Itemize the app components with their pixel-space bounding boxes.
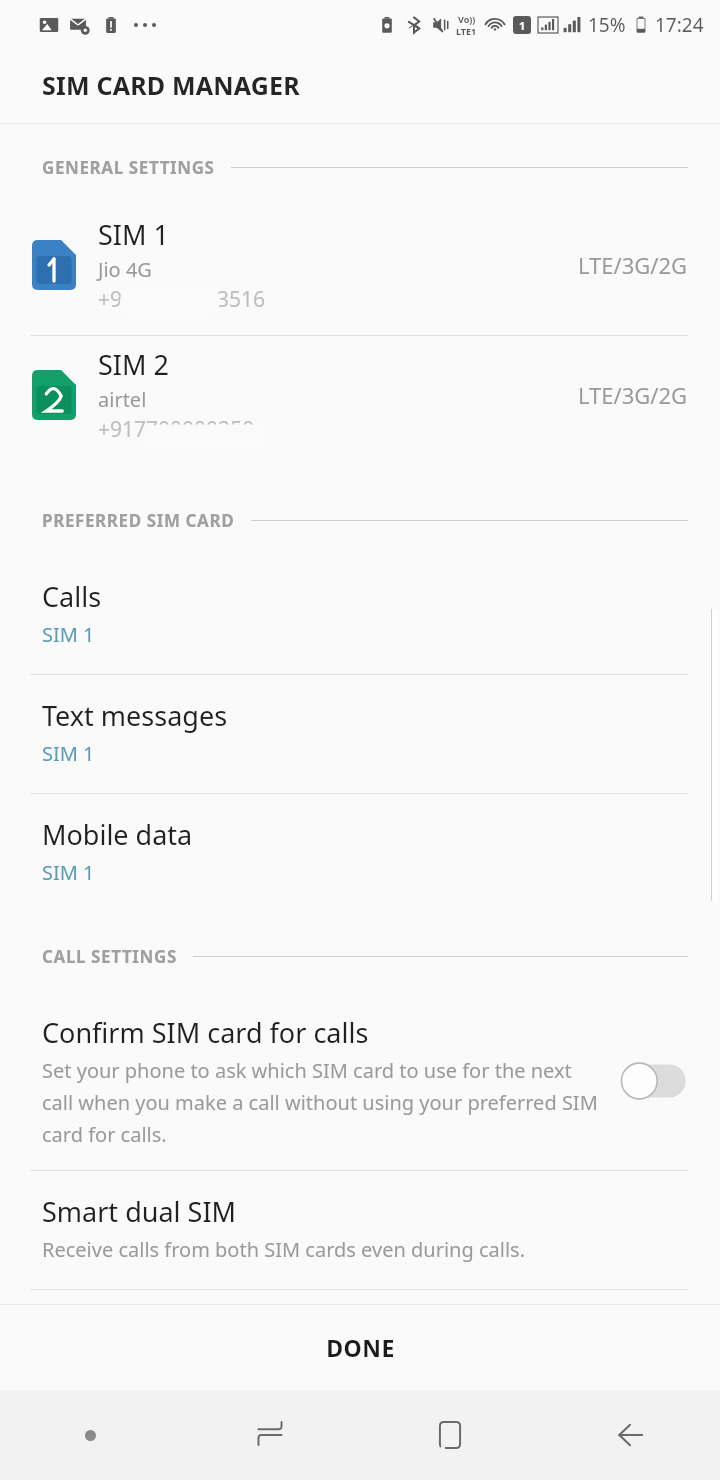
staticText: Mobile data bbox=[42, 816, 193, 853]
staticText: SIM 1 bbox=[42, 740, 95, 767]
button[interactable]: Smart dual SIM bbox=[0, 1171, 720, 1289]
button[interactable]: Confirm SIM card for calls toggle bbox=[618, 1058, 690, 1104]
staticText: Confirm SIM card for calls bbox=[42, 1014, 369, 1051]
staticText: +917700000250 bbox=[98, 415, 255, 443]
button[interactable]: SIM 1 bbox=[0, 206, 720, 335]
staticText: SIM 1 bbox=[98, 216, 169, 253]
staticText: LTE1 bbox=[456, 25, 477, 37]
staticText: PREFERRED SIM CARD bbox=[42, 509, 235, 532]
button[interactable]: Home bbox=[360, 1390, 540, 1480]
button[interactable]: Recent apps bbox=[180, 1390, 360, 1480]
button[interactable]: DONE bbox=[0, 1305, 720, 1390]
button[interactable]: SIM 2 bbox=[0, 336, 720, 465]
staticText: CALL SETTINGS bbox=[42, 945, 177, 968]
staticText: Calls bbox=[42, 578, 102, 615]
staticText: SIM 2 bbox=[98, 346, 169, 383]
staticText: Receive calls from both SIM cards even d… bbox=[42, 1236, 525, 1263]
staticText: Set your phone to ask which SIM card to … bbox=[42, 1057, 600, 1148]
staticText: LTE/3G/2G bbox=[578, 250, 688, 280]
staticText: Smart dual SIM bbox=[42, 1193, 237, 1230]
staticText: 1 bbox=[519, 18, 526, 33]
staticText: SIM 1 bbox=[42, 621, 95, 648]
button[interactable]: More options bbox=[0, 1390, 180, 1480]
staticText: +91 98765 43516 bbox=[98, 285, 266, 313]
staticText: SIM CARD MANAGER bbox=[42, 68, 300, 102]
staticText: LTE/3G/2G bbox=[578, 380, 688, 410]
button[interactable]: Mobile data bbox=[0, 794, 720, 912]
staticText: GENERAL SETTINGS bbox=[42, 156, 215, 179]
staticText: Text messages bbox=[42, 697, 228, 734]
staticText: Vo)) bbox=[458, 13, 476, 25]
button[interactable]: Calls bbox=[0, 556, 720, 674]
staticText: airtel bbox=[98, 386, 147, 413]
button[interactable]: Back bbox=[540, 1390, 720, 1480]
staticText: 17:24 bbox=[655, 12, 704, 38]
staticText: DONE bbox=[326, 1332, 395, 1363]
staticText: SIM 1 bbox=[42, 859, 95, 886]
button[interactable]: Confirm SIM card for calls bbox=[0, 996, 720, 1170]
button[interactable]: Text messages bbox=[0, 675, 720, 793]
staticText: Jio 4G bbox=[98, 256, 152, 283]
staticText: 15% bbox=[588, 12, 626, 38]
